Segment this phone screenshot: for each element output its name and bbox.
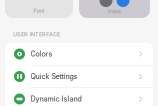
staticText: USER INTERFACE	[13, 31, 60, 38]
button[interactable]: Quick Settings	[5, 65, 153, 87]
button[interactable]: Colors	[5, 43, 153, 65]
staticText: Dynamic Island	[30, 95, 81, 103]
staticText: Colors	[30, 50, 52, 58]
staticText: Icons	[108, 8, 121, 14]
staticText: Font	[33, 7, 44, 14]
button[interactable]: Font	[5, 0, 73, 18]
button[interactable]: Dynamic Island	[5, 88, 153, 106]
staticText: Quick Settings	[30, 72, 77, 81]
button[interactable]: Icons	[79, 0, 150, 18]
